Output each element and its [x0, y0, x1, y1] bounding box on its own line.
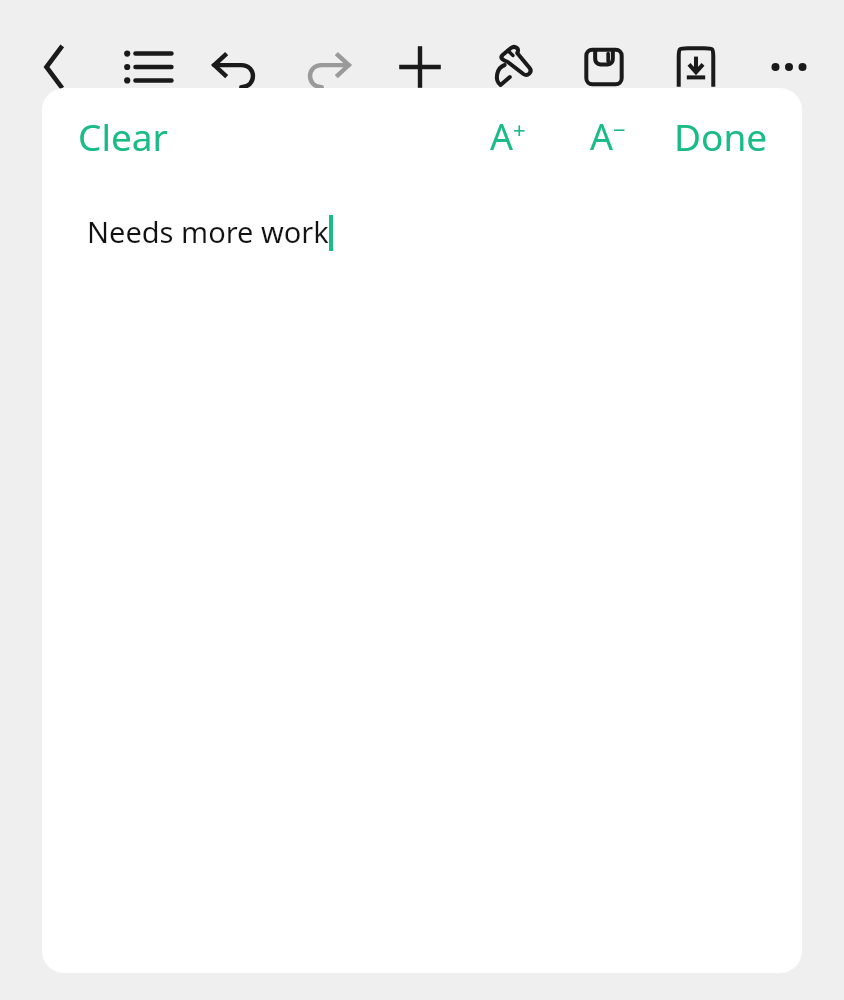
button[interactable]: Undo	[209, 43, 261, 91]
staticText: Done	[674, 111, 768, 161]
staticText: A−	[590, 112, 626, 161]
button[interactable]: Back	[33, 43, 81, 91]
button[interactable]: List	[122, 43, 174, 91]
button[interactable]: Redo	[302, 43, 354, 91]
button[interactable]: Decrease text size	[578, 104, 638, 169]
button[interactable]: Clear	[64, 103, 182, 169]
staticText: Clear	[78, 111, 168, 161]
button[interactable]: Needs more work	[42, 184, 802, 304]
button[interactable]: Marker	[487, 42, 539, 92]
button[interactable]: Increase text size	[478, 104, 538, 169]
button[interactable]: More options	[763, 43, 815, 91]
staticText: Needs more work	[87, 212, 329, 251]
button[interactable]: Add	[394, 43, 446, 91]
staticText: A+	[490, 112, 526, 161]
button[interactable]: Download	[669, 41, 723, 93]
button[interactable]: Save	[578, 43, 630, 91]
button[interactable]: Done	[660, 103, 782, 169]
